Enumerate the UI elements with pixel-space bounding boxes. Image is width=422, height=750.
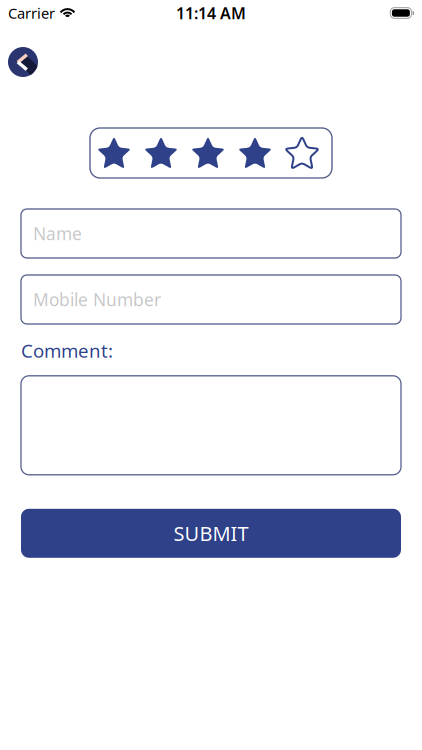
button[interactable]: Rate 2 stars: [142, 134, 180, 172]
button[interactable]: Comment: [21, 376, 401, 475]
staticText: Mobile Number: [33, 288, 161, 311]
button[interactable]: Rate 5 stars: [283, 134, 321, 172]
button[interactable]: Rate 1 star: [95, 134, 133, 172]
staticText: SUBMIT: [173, 520, 248, 547]
staticText: 11:14 AM: [176, 2, 246, 24]
button[interactable]: Name: [21, 209, 401, 258]
staticText: Name: [33, 222, 82, 245]
button[interactable]: Back: [8, 47, 38, 77]
button[interactable]: Rate 4 stars: [236, 134, 274, 172]
button[interactable]: Mobile Number: [21, 275, 401, 324]
staticText: Carrier: [8, 3, 55, 23]
staticText: Comment:: [21, 338, 113, 363]
button[interactable]: Rate 3 stars: [189, 134, 227, 172]
button[interactable]: SUBMIT: [21, 509, 401, 558]
